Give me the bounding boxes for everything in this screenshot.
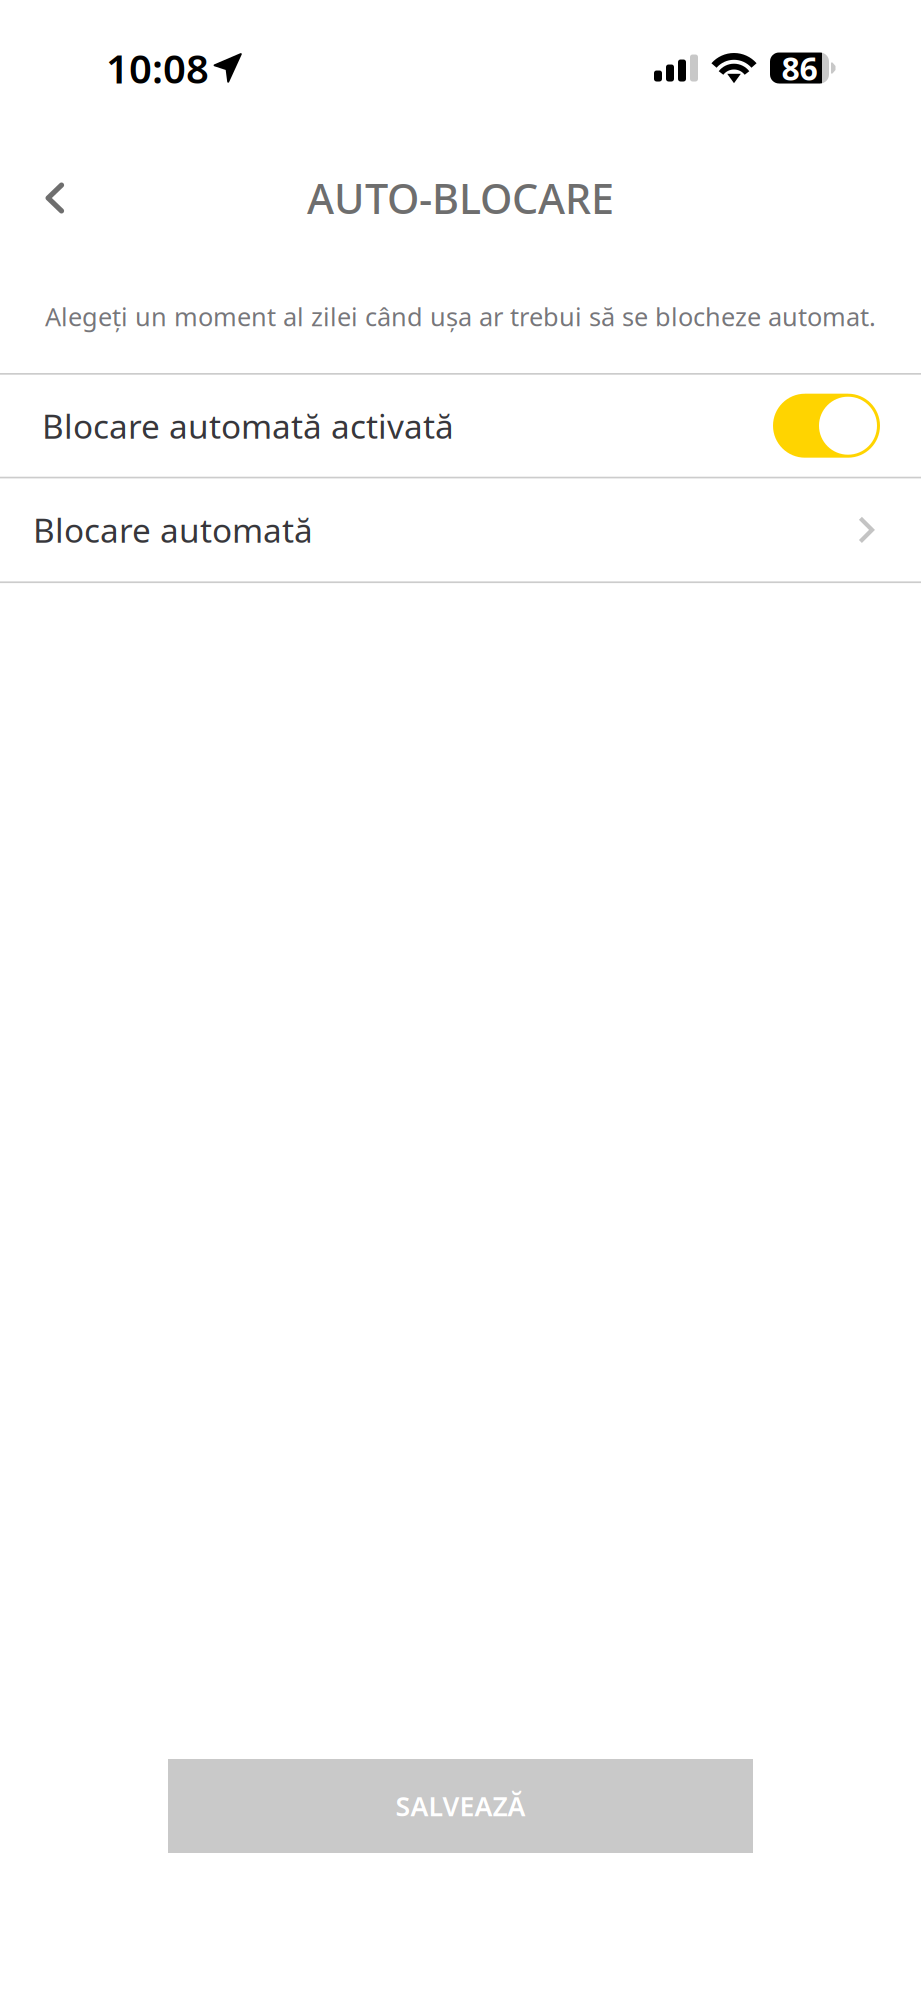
staticText: 10:08	[106, 41, 209, 94]
staticText: Blocare automată	[33, 508, 313, 552]
staticText: 86	[781, 47, 817, 89]
button[interactable]: SALVEAZĂ	[168, 1759, 753, 1853]
staticText: SALVEAZĂ	[395, 1788, 525, 1824]
button[interactable]: Back	[0, 153, 99, 242]
button[interactable]: Blocare automată	[0, 478, 921, 581]
staticText: Alegeți un moment al zilei când ușa ar t…	[45, 300, 876, 333]
staticText: Blocare automată activată	[42, 404, 454, 448]
button[interactable]: Blocare automată activată	[0, 375, 921, 477]
staticText: AUTO-BLOCARE	[307, 171, 614, 225]
